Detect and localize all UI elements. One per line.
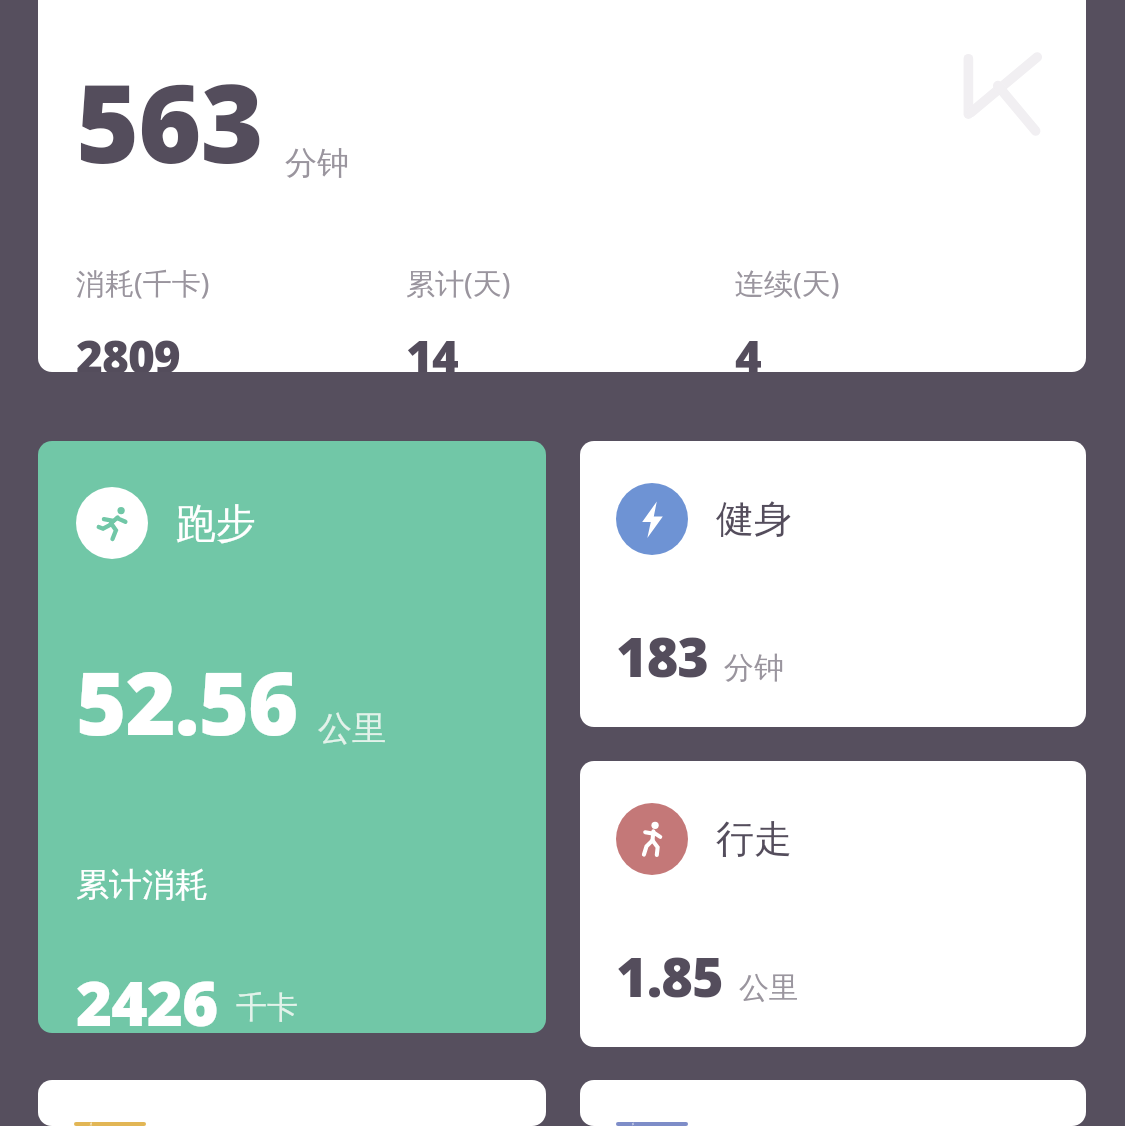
button[interactable]: 更多: [38, 1080, 546, 1126]
staticText: 4: [735, 325, 761, 372]
button[interactable]: 行走: [580, 761, 1086, 1047]
staticText: 2426: [76, 960, 218, 1033]
other: 健身: [616, 483, 688, 555]
button[interactable]: 跑步: [38, 441, 546, 1033]
staticText: 千卡: [236, 988, 298, 1027]
staticText: 14: [406, 325, 458, 372]
staticText: 分钟: [285, 143, 349, 183]
other: 更多: [74, 1122, 146, 1126]
staticText: 行走: [716, 815, 792, 863]
staticText: 分钟: [724, 649, 784, 687]
staticText: 1.85: [616, 939, 723, 1013]
other: 跑步: [76, 487, 148, 559]
staticText: 2809: [76, 325, 180, 372]
staticText: 跑步: [176, 498, 256, 548]
staticText: 公里: [739, 969, 799, 1007]
staticText: 累计消耗: [76, 864, 208, 906]
staticText: 连续(天): [735, 263, 840, 303]
staticText: 健身: [716, 495, 792, 543]
other: 更多: [616, 1122, 688, 1126]
staticText: 公里: [318, 707, 386, 750]
staticText: 消耗(千卡): [76, 263, 210, 303]
button[interactable]: 563: [38, 0, 1086, 372]
staticText: 563: [76, 48, 263, 195]
staticText: 183: [616, 619, 708, 693]
staticText: 52.56: [76, 643, 298, 760]
button[interactable]: 健身: [580, 441, 1086, 727]
staticText: 累计(天): [406, 263, 511, 303]
other: 行走: [616, 803, 688, 875]
button[interactable]: 更多: [580, 1080, 1086, 1126]
